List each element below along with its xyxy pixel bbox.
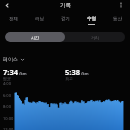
staticText: 전체 bbox=[9, 16, 18, 22]
button[interactable]: Back bbox=[1, 0, 14, 12]
staticText: 러닝 bbox=[35, 16, 44, 22]
button[interactable]: 러닝 bbox=[26, 13, 52, 26]
staticText: 8:00 bbox=[3, 104, 11, 109]
staticText: 페이스 bbox=[3, 56, 18, 62]
staticText: 걷기 bbox=[61, 16, 70, 22]
staticText: 등산 bbox=[113, 16, 122, 22]
button[interactable]: More options bbox=[114, 0, 127, 11]
button[interactable]: 수영 bbox=[78, 13, 104, 26]
button[interactable]: 걷기 bbox=[52, 13, 78, 26]
staticText: 평균 bbox=[3, 76, 11, 81]
staticText: 수영 bbox=[87, 16, 96, 22]
staticText: /km bbox=[19, 71, 27, 76]
staticText: 4:00 bbox=[3, 81, 11, 86]
staticText: 5:38 bbox=[65, 67, 80, 77]
staticText: 12:00 bbox=[3, 127, 14, 130]
button[interactable]: 시간 bbox=[5, 32, 65, 42]
button[interactable]: 거리 bbox=[65, 32, 125, 42]
staticText: 10:00 bbox=[3, 116, 14, 121]
staticText: 6:00 bbox=[3, 93, 11, 98]
staticText: 거리 bbox=[91, 35, 99, 40]
button[interactable]: 페이스 bbox=[3, 56, 25, 62]
staticText: 시간 bbox=[31, 35, 39, 40]
staticText: /km bbox=[81, 71, 89, 76]
button[interactable]: 전체 bbox=[0, 13, 26, 26]
button[interactable]: 등산 bbox=[104, 13, 130, 26]
staticText: 기록 bbox=[60, 2, 71, 9]
staticText: 최고 bbox=[65, 76, 73, 81]
staticText: 7:34 bbox=[3, 67, 18, 77]
